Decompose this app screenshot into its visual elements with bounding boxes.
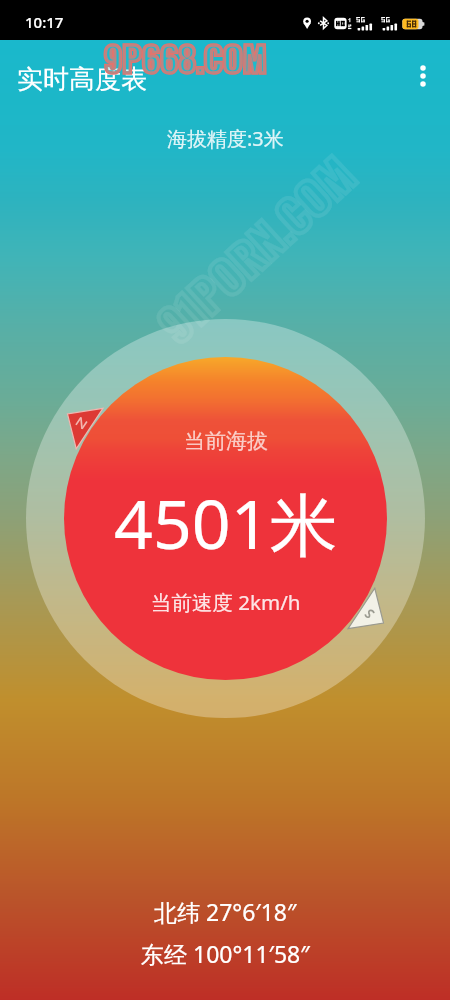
staticText: 当前速度 2km/h: [151, 588, 301, 616]
staticText: 9P668.COM: [104, 32, 267, 82]
staticText: 4501米: [114, 476, 338, 569]
staticText: 9P668.COM: [104, 32, 267, 82]
staticText: 北纬 27°6′18″: [154, 896, 297, 927]
staticText: 当前海拔: [184, 428, 268, 454]
button[interactable]: More options: [400, 53, 445, 98]
staticText: 东经 100°11′58″: [141, 938, 310, 969]
staticText: 10:17: [25, 12, 64, 32]
staticText: 实时高度表: [17, 63, 147, 96]
staticText: 海拔精度:3米: [167, 125, 284, 152]
